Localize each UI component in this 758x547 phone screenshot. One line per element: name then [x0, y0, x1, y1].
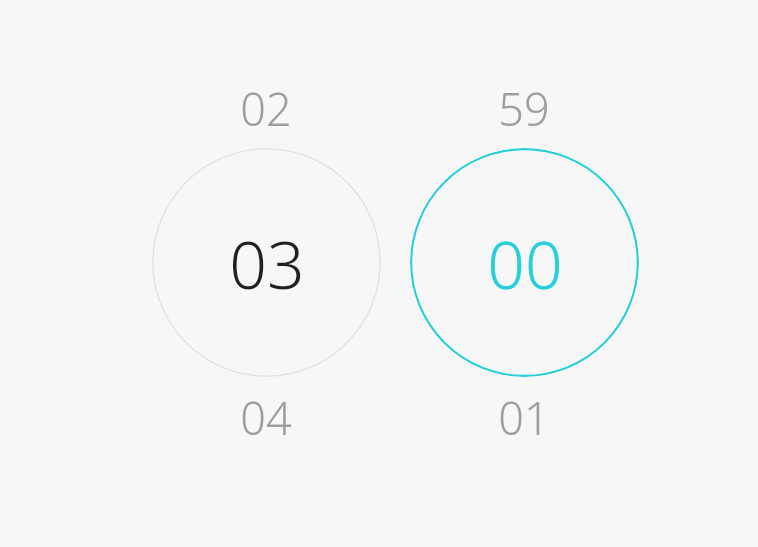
- button[interactable]: 03: [152, 148, 381, 377]
- staticText: 03: [229, 218, 305, 308]
- button[interactable]: 00: [410, 148, 639, 377]
- button[interactable]: 01: [395, 377, 653, 457]
- button[interactable]: 04: [137, 377, 395, 457]
- button[interactable]: Minutes picker, 03 selected: [137, 68, 395, 457]
- button[interactable]: 02: [137, 68, 395, 148]
- button[interactable]: 59: [395, 68, 653, 148]
- staticText: 59: [498, 78, 550, 139]
- staticText: 02: [240, 78, 292, 139]
- button[interactable]: Seconds picker, 00 selected: [395, 68, 653, 457]
- staticText: 04: [240, 387, 292, 448]
- staticText: 01: [498, 387, 550, 448]
- staticText: 00: [487, 218, 563, 308]
